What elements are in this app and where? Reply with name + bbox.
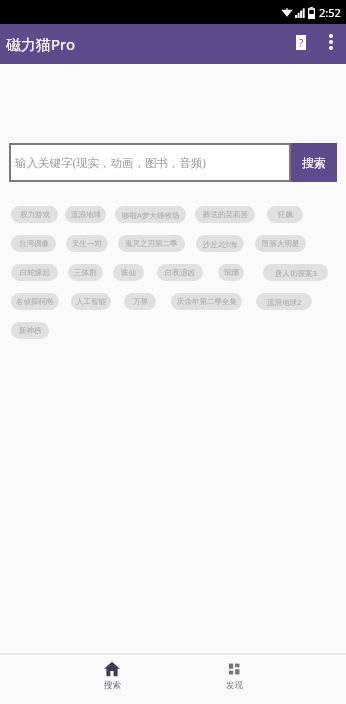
staticText: 流浪地球 <box>71 210 101 219</box>
staticText: 庆余年第二季全集 <box>177 297 237 306</box>
staticText: 白夜追凶 <box>165 268 195 277</box>
staticText: 琅琊 <box>224 268 239 277</box>
staticText: 万界 <box>133 297 148 306</box>
staticText: 葬送的芙莉莲 <box>203 210 248 219</box>
staticText: 鬼灭之刃第二季 <box>125 239 178 248</box>
staticText: 唐人街探案3 <box>275 268 317 278</box>
staticText: ? <box>299 36 304 50</box>
button[interactable]: 万界 <box>124 293 156 310</box>
button[interactable]: 诛仙 <box>113 264 144 281</box>
staticText: 三体剧 <box>74 268 97 277</box>
button[interactable]: 流浪地球2 <box>256 293 312 310</box>
staticText: 诛仙 <box>121 268 136 277</box>
button[interactable]: 堕落大明星 <box>255 235 306 252</box>
button[interactable]: 沙丘2沙海 <box>196 235 244 252</box>
staticText: 搜索 <box>302 155 326 170</box>
button[interactable]: 流浪地球 <box>65 206 106 223</box>
button[interactable]: 搜索 <box>51 655 173 704</box>
staticText: 人工智能 <box>76 297 106 306</box>
button[interactable]: 庆余年第二季全集 <box>171 293 242 310</box>
button[interactable]: 新神榜 <box>11 322 49 339</box>
button[interactable]: 台湾偶像 <box>11 235 56 252</box>
button[interactable]: 名侦探柯南 <box>11 293 59 310</box>
button[interactable]: 天生一对 <box>66 235 108 252</box>
staticText: 名侦探柯南 <box>16 297 54 306</box>
staticText: 发现 <box>226 680 243 691</box>
staticText: 输入关键字(现实，动画，图书，音频) <box>15 155 206 171</box>
staticText: 狂飙 <box>278 210 293 219</box>
button[interactable]: 白夜追凶 <box>157 264 203 281</box>
staticText: 白蛇缘起 <box>20 268 50 277</box>
button[interactable]: More options <box>316 27 346 57</box>
button[interactable]: 唐人街探案3 <box>263 264 328 281</box>
staticText: 搜索 <box>104 680 121 691</box>
staticText: 台湾偶像 <box>19 239 49 248</box>
staticText: 权力游戏 <box>20 210 50 219</box>
button[interactable]: 哆啦A梦大雄牧场 <box>115 206 186 223</box>
staticText: 流浪地球2 <box>267 297 302 307</box>
staticText: 天生一对 <box>72 239 102 248</box>
button[interactable]: 搜索 <box>291 143 337 182</box>
button[interactable]: 狂飙 <box>267 206 303 223</box>
button[interactable]: 三体剧 <box>68 264 103 281</box>
button[interactable]: 琅琊 <box>218 264 244 281</box>
staticText: 沙丘2沙海 <box>203 239 238 249</box>
staticText: 哆啦A梦大雄牧场 <box>122 210 180 220</box>
button[interactable]: 发现 <box>173 655 295 704</box>
button[interactable]: 鬼灭之刃第二季 <box>118 235 185 252</box>
staticText: 堕落大明星 <box>262 239 300 248</box>
button[interactable]: 人工智能 <box>71 293 111 310</box>
button[interactable]: 葬送的芙莉莲 <box>195 206 255 223</box>
staticText: 磁力猫Pro <box>6 34 76 54</box>
staticText: 新神榜 <box>19 326 42 335</box>
button[interactable]: Help <box>286 27 316 57</box>
staticText: 2:52 <box>319 5 341 20</box>
button[interactable]: 权力游戏 <box>11 206 58 223</box>
button[interactable]: 白蛇缘起 <box>11 264 58 281</box>
